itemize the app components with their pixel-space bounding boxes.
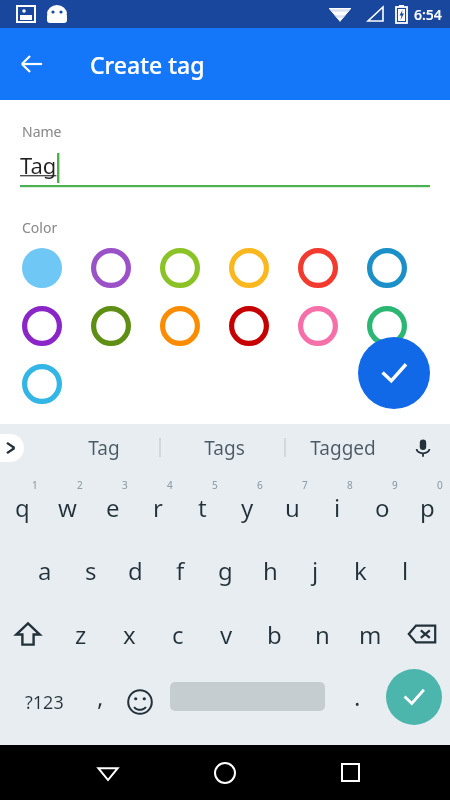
staticText: 6:54 [414, 5, 442, 24]
button[interactable]: Color option [298, 306, 338, 346]
button[interactable]: Color option [160, 248, 200, 288]
button[interactable]: h [248, 538, 293, 602]
button[interactable]: 3 [90, 471, 135, 538]
button[interactable]: s [68, 538, 113, 602]
button[interactable]: f [158, 538, 203, 602]
staticText: , [97, 680, 104, 713]
button[interactable]: a [22, 538, 68, 602]
button[interactable]: n [298, 602, 346, 666]
button[interactable]: Emoji [116, 666, 164, 738]
staticText: r [153, 491, 163, 524]
button[interactable]: Tag [52, 424, 156, 471]
button[interactable]: Color option [22, 364, 62, 404]
button[interactable]: Tagged [291, 424, 395, 471]
staticText: 7 [302, 478, 308, 492]
button[interactable]: Color option [229, 306, 269, 346]
staticText: l [402, 554, 409, 587]
button[interactable]: v [202, 602, 250, 666]
button[interactable]: . [335, 666, 379, 738]
button[interactable]: 8 [315, 471, 360, 538]
staticText: p [420, 491, 435, 524]
button[interactable]: Color option [91, 248, 131, 288]
staticText: ?123 [25, 690, 64, 715]
button[interactable]: l [383, 538, 428, 602]
staticText: Tags [204, 435, 245, 461]
button[interactable]: d [113, 538, 158, 602]
button[interactable]: Save tag [358, 337, 430, 409]
button[interactable]: Enter [386, 669, 442, 725]
button[interactable]: z [56, 602, 105, 666]
button[interactable]: k [338, 538, 383, 602]
button[interactable]: Expand suggestions [0, 434, 24, 462]
staticText: 9 [392, 478, 398, 492]
button[interactable]: x [105, 602, 154, 666]
staticText: o [375, 491, 390, 524]
button[interactable]: Color option [229, 248, 269, 288]
staticText: x [123, 618, 136, 651]
staticText: q [15, 491, 30, 524]
staticText: f [176, 554, 185, 587]
button[interactable]: 4 [135, 471, 180, 538]
staticText: a [38, 554, 52, 587]
button[interactable]: Voice input [406, 431, 440, 465]
button[interactable]: b [250, 602, 298, 666]
button[interactable]: Shift [0, 602, 56, 666]
button[interactable]: Recents [320, 745, 380, 800]
button[interactable]: c [154, 602, 202, 666]
staticText: Tag [20, 150, 57, 180]
staticText: i [334, 491, 341, 524]
staticText: d [128, 554, 143, 587]
staticText: Tagged [310, 435, 376, 461]
button[interactable]: 0 [405, 471, 450, 538]
button[interactable]: Color option [22, 306, 62, 346]
staticText: Color [22, 218, 58, 237]
button[interactable]: Color option [298, 248, 338, 288]
staticText: 1 [32, 478, 38, 492]
button[interactable]: Tags [172, 424, 276, 471]
button[interactable]: m [346, 602, 394, 666]
button[interactable]: Home [195, 745, 255, 800]
button[interactable]: 9 [360, 471, 405, 538]
staticText: t [198, 491, 207, 524]
button[interactable]: 5 [180, 471, 225, 538]
staticText: b [267, 618, 282, 651]
staticText: Create tag [90, 49, 205, 80]
button[interactable]: 7 [270, 471, 315, 538]
staticText: 8 [347, 478, 353, 492]
button[interactable]: g [203, 538, 248, 602]
staticText: 5 [212, 478, 218, 492]
button[interactable]: , [74, 666, 126, 738]
staticText: s [85, 554, 97, 587]
button[interactable]: Color light blue selected [22, 248, 62, 288]
staticText: Name [22, 122, 62, 141]
staticText: h [263, 554, 278, 587]
button[interactable]: j [293, 538, 338, 602]
staticText: c [172, 618, 184, 651]
staticText: v [220, 618, 233, 651]
button[interactable]: 6 [225, 471, 270, 538]
button[interactable]: Backspace [394, 602, 450, 666]
staticText: Tag [88, 435, 120, 461]
staticText: . [354, 680, 361, 713]
button[interactable]: ?123 [8, 666, 80, 738]
staticText: j [312, 554, 319, 587]
button[interactable]: Color option [91, 306, 131, 346]
staticText: z [75, 618, 87, 651]
button[interactable]: 1 [0, 471, 45, 538]
staticText: 4 [167, 478, 173, 492]
button[interactable]: Color option [160, 306, 200, 346]
staticText: 2 [77, 478, 83, 492]
staticText: 3 [122, 478, 128, 492]
staticText: m [359, 618, 382, 651]
button[interactable]: Back [8, 40, 56, 88]
staticText: 6 [257, 478, 263, 492]
button[interactable]: Color option [367, 306, 407, 346]
staticText: k [354, 554, 367, 587]
button[interactable]: Back [78, 745, 138, 800]
staticText: u [285, 491, 300, 524]
staticText: 0 [437, 478, 443, 492]
button[interactable]: Color option [367, 248, 407, 288]
button[interactable]: 2 [45, 471, 90, 538]
staticText: n [315, 618, 330, 651]
